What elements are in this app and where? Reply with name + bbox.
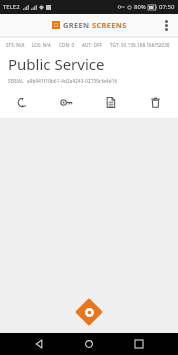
staticText: SERIAL	[8, 78, 24, 84]
staticText: AUT: OFF	[82, 42, 103, 48]
button[interactable]: Key	[44, 90, 88, 114]
button[interactable]: More options	[156, 15, 176, 35]
button[interactable]: Back	[30, 335, 48, 353]
staticText: LCK: N/A	[32, 42, 52, 48]
button[interactable]: Home	[80, 335, 98, 353]
staticText: STS: N/A	[6, 42, 25, 48]
button[interactable]: Recents	[130, 335, 148, 353]
button[interactable]: Delete	[133, 90, 178, 114]
staticText: CON: 0	[59, 42, 75, 48]
staticText: SCREENS	[92, 20, 127, 30]
staticText: 80%	[134, 3, 146, 11]
staticText: Public Service	[8, 54, 105, 74]
staticText: GREEN	[63, 20, 90, 30]
staticText: a9b941f19b61-4d2a4243-02759cfe4d16	[27, 78, 118, 84]
button[interactable]: Log	[88, 90, 133, 114]
button[interactable]: Refresh	[0, 90, 44, 114]
button[interactable]: Add service	[74, 297, 104, 327]
staticText: TELE2	[3, 3, 20, 11]
staticText: 07:50	[159, 3, 175, 11]
staticText: TGT: 93.139.168.166/52030	[110, 42, 170, 48]
